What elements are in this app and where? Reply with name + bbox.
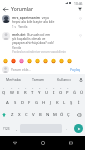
button[interactable]: 3	[15, 85, 22, 97]
button[interactable]: 9	[57, 85, 64, 97]
staticText: Kullanıcı	[57, 77, 71, 82]
staticText: Ş	[70, 100, 73, 106]
button[interactable]: Kullanıcı	[51, 74, 76, 85]
staticText: 9	[60, 87, 62, 90]
staticText: .	[66, 126, 67, 131]
button[interactable]: Emoji	[33, 56, 41, 64]
button[interactable]: 6	[36, 85, 43, 97]
staticText: Q	[2, 90, 6, 96]
staticText: L	[63, 100, 66, 106]
button[interactable]: Back	[0, 5, 11, 13]
staticText: Yorum ekle...	[11, 67, 32, 71]
staticText: X	[18, 112, 21, 118]
staticText: Ö	[60, 112, 64, 118]
staticText: U	[45, 90, 49, 96]
button[interactable]: V	[30, 109, 37, 121]
staticText: 3	[18, 87, 20, 90]
button[interactable]: Shift	[0, 109, 8, 121]
staticText: I	[53, 90, 55, 96]
button[interactable]: İ	[75, 97, 82, 109]
button[interactable]: Recents	[57, 136, 85, 150]
button[interactable]: 8	[50, 85, 57, 97]
button[interactable]: Backspace	[72, 109, 85, 121]
staticText: N	[46, 112, 50, 118]
staticText: S	[14, 100, 17, 106]
button[interactable]: 4	[22, 85, 29, 97]
staticText: E	[17, 90, 20, 96]
staticText: Tamam	[32, 77, 45, 82]
staticText: 2	[11, 87, 13, 90]
button[interactable]: mrs_apartmanim veya hepsi ala bile baştı…	[0, 15, 85, 29]
button[interactable]: X	[16, 109, 23, 121]
button[interactable]: 1	[0, 85, 8, 97]
staticText: Yorumlar	[11, 6, 34, 13]
button[interactable]: Emoji	[57, 56, 65, 64]
button[interactable]: Voice input	[76, 74, 85, 85]
button[interactable]: M	[51, 109, 58, 121]
button[interactable]: Home	[29, 136, 57, 150]
button[interactable]: Emoji	[49, 56, 57, 64]
staticText: Yanıtla	[12, 46, 22, 50]
button[interactable]: Send	[71, 121, 85, 136]
button[interactable]: Tamam	[26, 74, 51, 85]
button[interactable]: G	[33, 97, 40, 109]
button[interactable]: B	[37, 109, 44, 121]
button[interactable]: ?123	[0, 121, 13, 136]
staticText: R	[24, 90, 27, 96]
button[interactable]: Ö	[58, 109, 65, 121]
staticText: T	[31, 90, 34, 96]
button[interactable]: meh.det Bunushool em şık kaçabilis olmak…	[0, 32, 85, 50]
button[interactable]: 5	[29, 85, 36, 97]
button[interactable]: Ü	[78, 85, 85, 97]
button[interactable]: Emoji	[1, 56, 9, 64]
staticText: Paylaşılan gönderiye yorum yapabilirsin	[12, 50, 67, 53]
button[interactable]: ,	[13, 121, 20, 136]
staticText: 1 s Yanıtla	[12, 25, 28, 29]
button[interactable]: H	[40, 97, 47, 109]
staticText: 5	[32, 87, 34, 90]
button[interactable]: 7	[43, 85, 50, 97]
button[interactable]: L	[61, 97, 68, 109]
button[interactable]: Filter	[74, 5, 85, 13]
staticText: 10:46	[74, 1, 83, 5]
button[interactable]: Ç	[65, 109, 72, 121]
staticText: H	[42, 100, 46, 106]
button[interactable]: S	[11, 97, 19, 109]
button[interactable]: Merhaba	[0, 74, 26, 85]
staticText: İ	[78, 100, 80, 106]
staticText: M	[53, 112, 57, 118]
staticText: Ü	[80, 90, 84, 96]
button[interactable]: C	[23, 109, 30, 121]
staticText: 7	[46, 87, 48, 90]
button[interactable]: Paylaş	[69, 67, 82, 71]
button[interactable]: Back	[0, 136, 29, 150]
button[interactable]: D	[19, 97, 26, 109]
button[interactable]: Z	[8, 109, 16, 121]
staticText: G	[35, 100, 39, 106]
button[interactable]: F	[26, 97, 33, 109]
staticText: Ç	[67, 112, 70, 118]
button[interactable]: 0	[64, 85, 71, 97]
button[interactable]: 2	[8, 85, 15, 97]
button[interactable]: Yorum ekle...	[11, 67, 69, 71]
button[interactable]: Emoji	[41, 56, 49, 64]
button[interactable]: Emoji	[9, 56, 17, 64]
button[interactable]: Ğ	[71, 85, 78, 97]
staticText: ?123	[3, 127, 10, 131]
button[interactable]: Emoji	[25, 56, 33, 64]
button[interactable]: Emoji	[65, 56, 73, 64]
staticText: 1	[3, 87, 5, 90]
button[interactable]: N	[44, 109, 51, 121]
button[interactable]: J	[47, 97, 54, 109]
staticText: C	[25, 112, 28, 118]
staticText: A	[6, 100, 9, 106]
button[interactable]: Ş	[68, 97, 75, 109]
button[interactable]: Emoji	[17, 56, 25, 64]
button[interactable]: K	[54, 97, 61, 109]
staticText: P	[66, 90, 69, 96]
button[interactable]: A	[3, 97, 11, 109]
staticText: 0	[67, 87, 69, 90]
staticText: V	[32, 112, 35, 118]
